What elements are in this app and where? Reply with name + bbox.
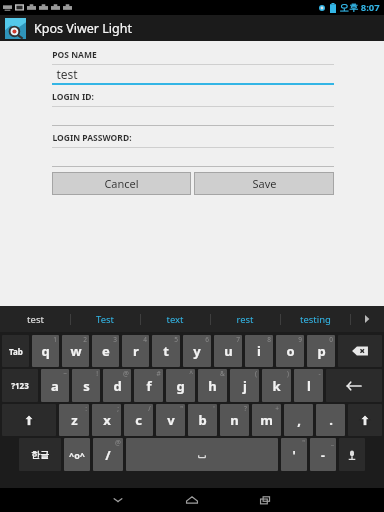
button[interactable]: Test bbox=[70, 306, 140, 332]
staticText: 4 bbox=[143, 335, 147, 344]
button[interactable]: q bbox=[32, 335, 59, 367]
staticText: test bbox=[56, 66, 78, 82]
staticText: ?123 bbox=[11, 380, 29, 391]
staticText: z bbox=[71, 411, 78, 429]
button[interactable]: v bbox=[156, 404, 185, 436]
staticText: 5 bbox=[174, 335, 178, 344]
staticText: _ bbox=[331, 438, 334, 447]
button[interactable]: rest bbox=[210, 306, 280, 332]
button[interactable]: p bbox=[307, 335, 335, 367]
staticText: : bbox=[85, 404, 87, 413]
button[interactable]: l bbox=[294, 369, 323, 402]
button[interactable]: h bbox=[198, 369, 227, 402]
staticText: i bbox=[257, 342, 261, 360]
button[interactable]: e bbox=[92, 335, 119, 367]
button[interactable]: More suggestions bbox=[350, 306, 384, 332]
staticText: + bbox=[275, 404, 279, 413]
button[interactable]: s bbox=[72, 369, 100, 402]
button[interactable]: j bbox=[230, 369, 259, 402]
button[interactable]: Save bbox=[194, 172, 334, 195]
button[interactable]: ^o^ bbox=[64, 438, 90, 471]
button[interactable]: - bbox=[310, 438, 336, 471]
button[interactable]: test bbox=[52, 65, 334, 83]
staticText: x bbox=[103, 411, 111, 429]
staticText: a bbox=[51, 377, 59, 395]
staticText: f bbox=[146, 377, 152, 395]
staticText: s bbox=[83, 377, 90, 395]
staticText: " bbox=[302, 438, 305, 447]
button[interactable]: c bbox=[124, 404, 153, 436]
staticText: e bbox=[102, 342, 110, 360]
staticText: testing bbox=[300, 313, 331, 326]
button[interactable]: Backspace bbox=[338, 335, 382, 367]
staticText: POS NAME bbox=[52, 49, 97, 61]
button[interactable]: text bbox=[140, 306, 210, 332]
button[interactable]: n bbox=[220, 404, 249, 436]
button[interactable]: Hide keyboard bbox=[81, 488, 155, 512]
staticText: 0 bbox=[329, 335, 333, 344]
button[interactable]: a bbox=[41, 369, 69, 402]
button[interactable]: , bbox=[284, 404, 313, 436]
staticText: ' bbox=[292, 447, 296, 463]
button[interactable]: / bbox=[93, 438, 123, 471]
button[interactable]: g bbox=[166, 369, 195, 402]
button[interactable]: Recent apps bbox=[229, 488, 303, 512]
button[interactable]: testing bbox=[280, 306, 350, 332]
staticText: - bbox=[321, 447, 325, 463]
button[interactable]: . bbox=[316, 404, 345, 436]
staticText: n bbox=[230, 411, 239, 429]
staticText: 6 bbox=[205, 335, 209, 344]
staticText: 오후 8:07 bbox=[339, 1, 380, 14]
staticText: 9 bbox=[298, 335, 302, 344]
staticText: @ bbox=[123, 369, 129, 378]
button[interactable]: Home bbox=[155, 488, 229, 512]
staticText: ; bbox=[117, 404, 119, 413]
staticText: 1 bbox=[53, 335, 57, 344]
button[interactable]: r bbox=[122, 335, 149, 367]
button[interactable]: y bbox=[183, 335, 211, 367]
staticText: text bbox=[166, 313, 184, 326]
staticText: / bbox=[105, 446, 111, 464]
staticText: t bbox=[163, 342, 169, 360]
button[interactable]: ' bbox=[281, 438, 307, 471]
button[interactable]: Shift right bbox=[348, 404, 382, 436]
staticText: , bbox=[297, 411, 301, 429]
button[interactable]: k bbox=[262, 369, 291, 402]
button[interactable]: Voice input bbox=[339, 438, 365, 471]
staticText: y bbox=[193, 342, 201, 360]
button[interactable]: m bbox=[252, 404, 281, 436]
button[interactable]: z bbox=[59, 404, 89, 436]
staticText: ! bbox=[96, 369, 98, 378]
button[interactable]: test bbox=[0, 306, 70, 332]
button[interactable]: Enter bbox=[326, 369, 382, 402]
staticText: Cancel bbox=[104, 176, 139, 191]
button[interactable]: u bbox=[214, 335, 242, 367]
staticText: ) bbox=[287, 369, 289, 378]
button[interactable]: 한글 bbox=[19, 438, 61, 471]
staticText: / bbox=[148, 404, 151, 413]
staticText: LOGIN PASSWORD: bbox=[52, 132, 132, 144]
button[interactable]: b bbox=[188, 404, 217, 436]
staticText: Save bbox=[252, 176, 277, 191]
staticText: 3 bbox=[113, 335, 117, 344]
button[interactable]: d bbox=[103, 369, 131, 402]
staticText: l bbox=[307, 377, 311, 395]
staticText: Tab bbox=[9, 346, 23, 357]
button[interactable]: f bbox=[134, 369, 163, 402]
button[interactable]: ?123 bbox=[2, 369, 38, 402]
button[interactable]: Shift bbox=[2, 404, 56, 436]
button[interactable]: o bbox=[276, 335, 304, 367]
button[interactable]: i bbox=[245, 335, 273, 367]
button[interactable]: Space bbox=[126, 438, 278, 471]
button[interactable]: w bbox=[62, 335, 89, 367]
button[interactable]: Cancel bbox=[52, 172, 191, 195]
staticText: test bbox=[27, 313, 44, 326]
staticText: h bbox=[208, 377, 217, 395]
staticText: k bbox=[272, 377, 281, 395]
button[interactable]: Tab bbox=[2, 335, 29, 367]
staticText: u bbox=[224, 342, 233, 360]
button[interactable]: t bbox=[152, 335, 180, 367]
button[interactable]: x bbox=[92, 404, 121, 436]
